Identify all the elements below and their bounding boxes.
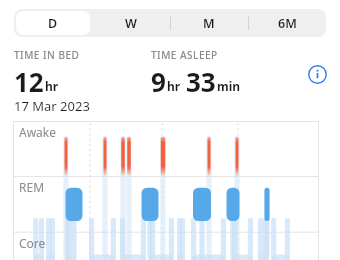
button[interactable]: M [170, 9, 248, 37]
staticText: min [217, 78, 241, 94]
staticText: TIME IN BED [14, 48, 80, 62]
button[interactable]: About sleep stages [308, 65, 327, 84]
button[interactable]: D [14, 9, 92, 37]
staticText: M [203, 15, 215, 32]
staticText: W [125, 15, 137, 32]
staticText: Awake [19, 124, 57, 140]
staticText: 6M [278, 15, 297, 32]
button[interactable]: W [92, 9, 170, 37]
staticText: 9 [151, 64, 166, 97]
staticText: D [48, 15, 58, 32]
button[interactable]: 6M [248, 9, 326, 37]
staticText: 17 Mar 2023 [14, 97, 90, 115]
staticText: TIME ASLEEP [151, 48, 218, 62]
staticText: 33 [186, 64, 216, 97]
staticText: hr [45, 78, 59, 94]
staticText: REM [19, 179, 45, 195]
staticText: hr [167, 78, 181, 94]
staticText: Core [19, 235, 46, 251]
staticText: 12 [14, 64, 44, 97]
